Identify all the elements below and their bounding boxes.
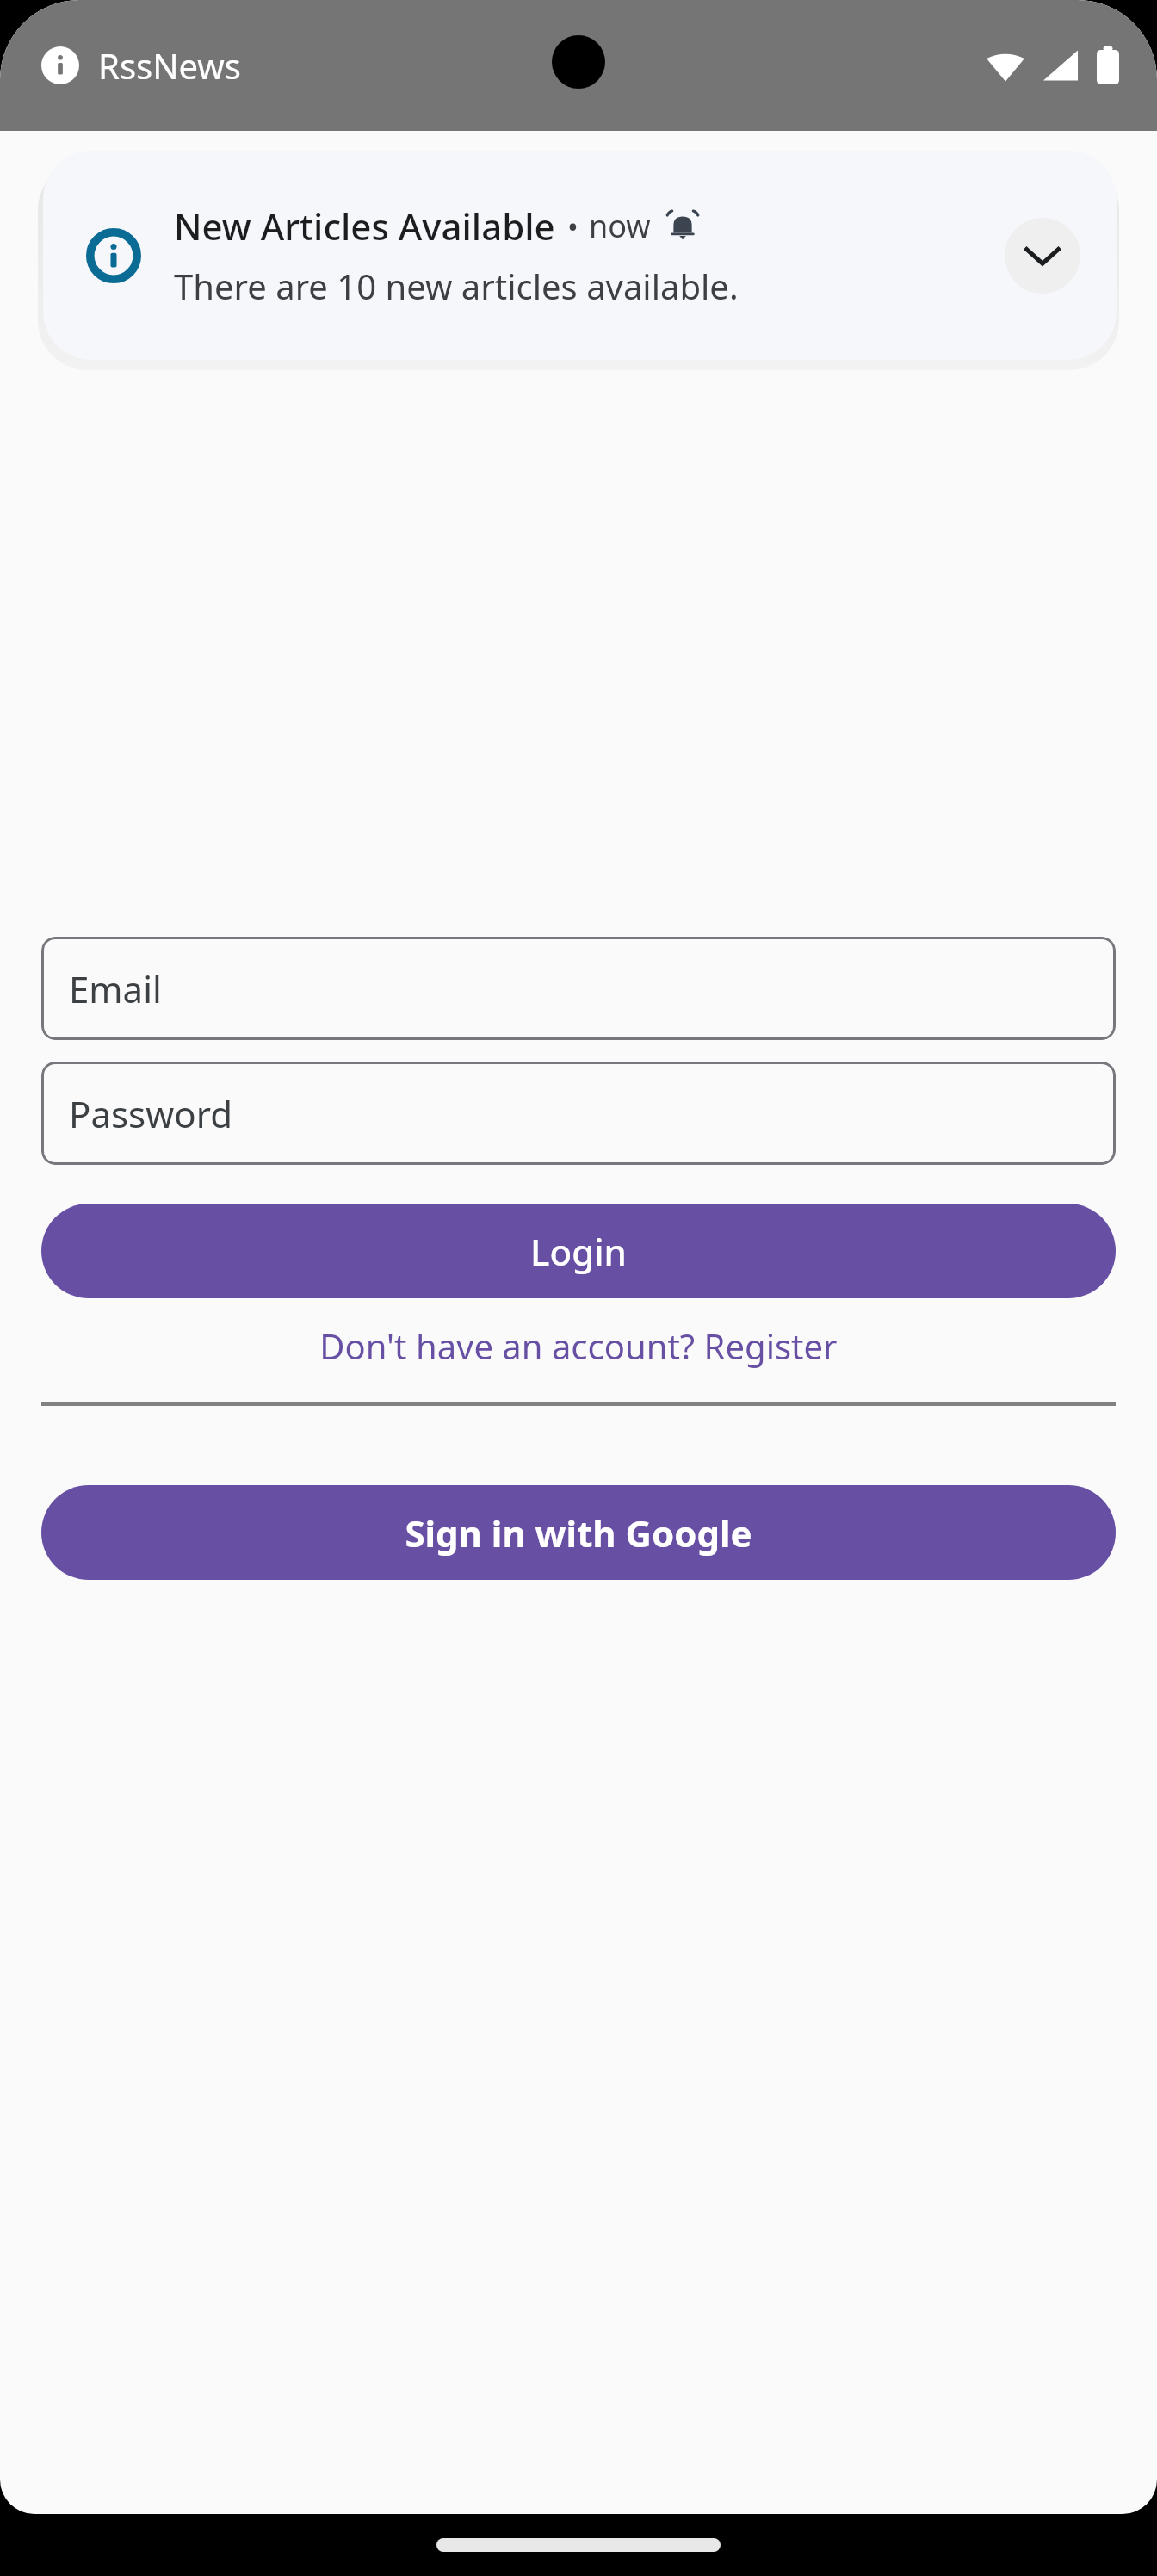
button[interactable]: Login (41, 1204, 1116, 1298)
staticText: Don't have an account? Register (319, 1322, 838, 1369)
button[interactable]: Email (41, 937, 1116, 1040)
staticText: RssNews (98, 42, 241, 89)
staticText: Login (530, 1227, 627, 1276)
button[interactable]: Don't have an account? Register (41, 1298, 1116, 1393)
staticText: New Articles Available (174, 201, 555, 251)
button[interactable]: Sign in with Google (41, 1485, 1116, 1580)
staticText: Sign in with Google (405, 1508, 752, 1557)
button[interactable]: Password (41, 1062, 1116, 1165)
staticText: now (589, 205, 651, 247)
button[interactable]: New Articles Available (43, 151, 1117, 360)
staticText: • (567, 207, 578, 246)
button[interactable]: Expand notification (1005, 218, 1080, 294)
staticText: There are 10 new articles available. (174, 263, 739, 309)
staticText: Password (69, 1089, 232, 1138)
staticText: Email (69, 964, 162, 1013)
